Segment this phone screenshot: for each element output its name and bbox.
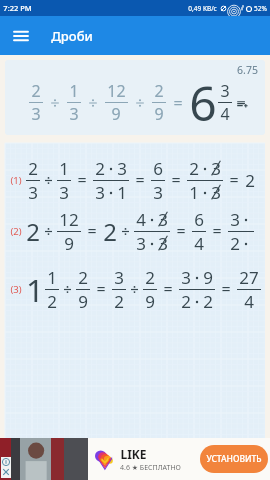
staticText: = (221, 278, 231, 300)
staticText: 2 (78, 266, 88, 289)
staticText: 2 (47, 290, 57, 313)
staticText: 2 (114, 290, 124, 313)
staticText: (1) (10, 174, 22, 187)
button[interactable]: УСТАНОВИТЬ (200, 445, 268, 473)
staticText: 27 (239, 266, 259, 289)
staticText: 1 (59, 157, 69, 180)
staticText: 3 (59, 181, 69, 204)
button[interactable]: Ad info (0, 438, 270, 480)
staticText: 2 (28, 157, 38, 180)
staticText: = (212, 220, 222, 242)
button[interactable]: (2) (5, 207, 265, 255)
staticText: 3 (114, 266, 124, 289)
button[interactable]: Open navigation menu (7, 22, 35, 50)
staticText: 2 (31, 80, 41, 102)
staticText: 1 (117, 181, 127, 204)
staticText: 3 (158, 232, 168, 255)
staticText: УСТАНОВИТЬ (206, 453, 262, 465)
staticText: 4 (136, 208, 146, 231)
staticText: 9 (154, 103, 164, 125)
button[interactable]: (3) (5, 265, 265, 313)
staticText: 2 (189, 157, 199, 180)
staticText: = (176, 220, 186, 242)
staticText: 2 (103, 215, 117, 248)
staticText: 6 (189, 70, 217, 135)
staticText: 12 (107, 80, 126, 102)
staticText: 9 (203, 266, 213, 289)
staticText: = (135, 169, 145, 191)
staticText: (3) (10, 283, 22, 296)
button[interactable]: (1) (5, 156, 265, 204)
staticText: 7:22 PM (3, 3, 32, 13)
staticText: = (229, 169, 239, 191)
staticText: 3 (153, 181, 163, 204)
staticText: LIKE (120, 446, 147, 462)
staticText: 1 (47, 266, 57, 289)
staticText: = (87, 220, 97, 242)
staticText: = (163, 278, 173, 300)
staticText: = (77, 169, 87, 191)
button[interactable]: 6.75 (5, 60, 265, 135)
staticText: 3 (158, 208, 168, 231)
staticText: 3 (181, 266, 191, 289)
staticText: 52% (254, 4, 267, 13)
staticText: 6.75 (237, 63, 258, 77)
staticText: 2 (145, 266, 155, 289)
staticText: 3 (28, 181, 38, 204)
staticText: 2 (95, 157, 105, 180)
staticText: Дроби (51, 27, 93, 45)
staticText: ⫽ (241, 5, 244, 12)
staticText: 9 (145, 290, 155, 313)
staticText: = (171, 169, 181, 191)
staticText: 3 (230, 208, 240, 231)
staticText: 3 (31, 103, 41, 125)
staticText: 2 (203, 290, 213, 313)
staticText: 9 (64, 232, 74, 255)
staticText: 0,49 KB/c (188, 4, 217, 13)
staticText: = (173, 92, 183, 114)
staticText: 6 (194, 208, 204, 231)
staticText: 4 (194, 232, 204, 255)
staticText: 9 (111, 103, 121, 125)
staticText: 12 (59, 208, 79, 231)
staticText: 2 (230, 232, 240, 255)
staticText: 2 (154, 80, 164, 102)
staticText: 1 (189, 181, 199, 204)
staticText: 3 (220, 80, 230, 102)
staticText: 3 (69, 103, 79, 125)
button[interactable]: Ad info (1, 457, 11, 467)
staticText: 3 (95, 181, 105, 204)
staticText: 4.6 ★ БЕСПЛАТНО (120, 463, 181, 473)
staticText: 1 (26, 268, 44, 311)
staticText: 3 (136, 232, 146, 255)
staticText: 2 (181, 290, 191, 313)
staticText: 2 (245, 169, 255, 192)
staticText: 4 (244, 290, 254, 313)
staticText: = (96, 278, 106, 300)
staticText: 3 (211, 157, 221, 180)
staticText: 6 (153, 157, 163, 180)
staticText: 2 (26, 215, 40, 248)
button[interactable]: Add to list (236, 97, 248, 109)
staticText: 3 (211, 181, 221, 204)
button[interactable]: Close ad (1, 467, 11, 477)
staticText: 9 (78, 290, 88, 313)
staticText: 3 (117, 157, 127, 180)
staticText: 4 (220, 103, 230, 125)
staticText: 1 (69, 80, 79, 102)
staticText: (2) (10, 225, 22, 238)
